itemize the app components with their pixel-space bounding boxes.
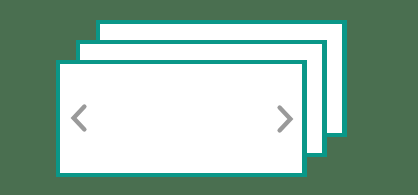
button[interactable]: Previous bbox=[62, 97, 96, 139]
button[interactable]: Next bbox=[268, 98, 302, 140]
button[interactable]: Card bbox=[56, 60, 307, 177]
